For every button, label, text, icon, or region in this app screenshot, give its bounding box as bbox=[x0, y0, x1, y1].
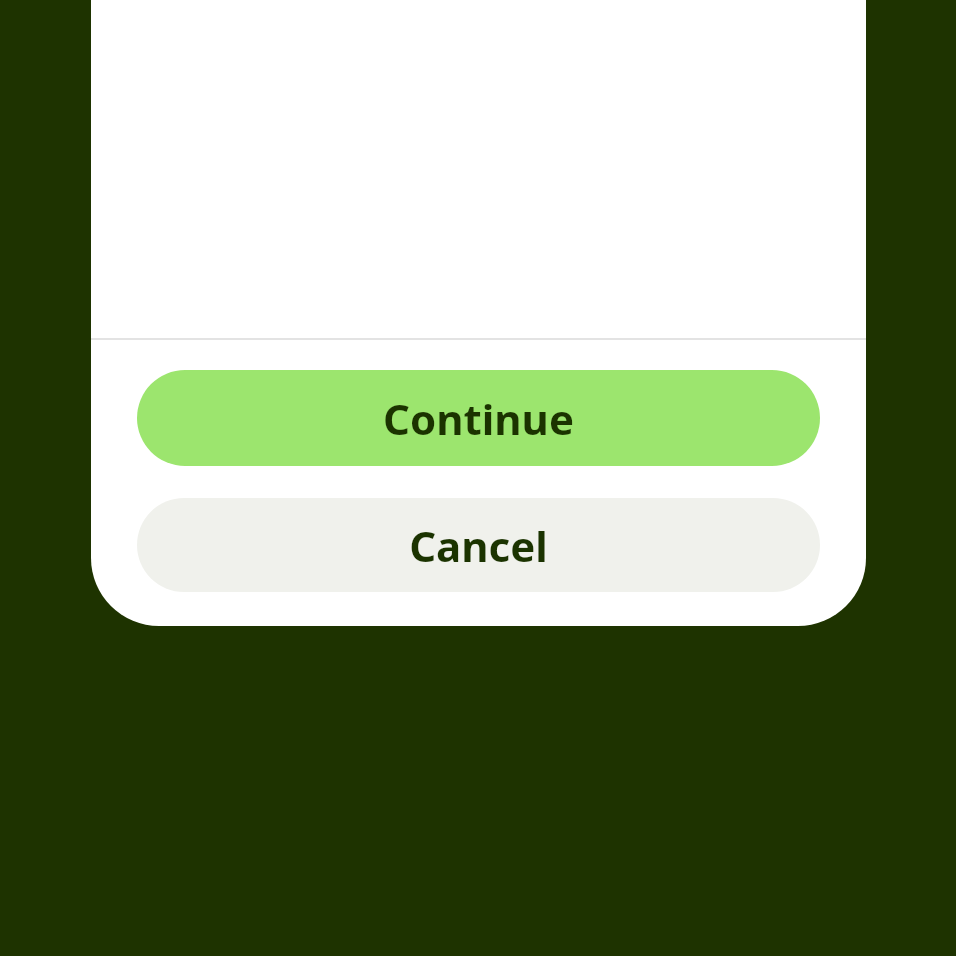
button[interactable]: Cancel bbox=[137, 498, 820, 592]
staticText: Cancel bbox=[409, 517, 548, 574]
staticText: Continue bbox=[383, 390, 574, 447]
button[interactable]: Continue bbox=[137, 370, 820, 466]
